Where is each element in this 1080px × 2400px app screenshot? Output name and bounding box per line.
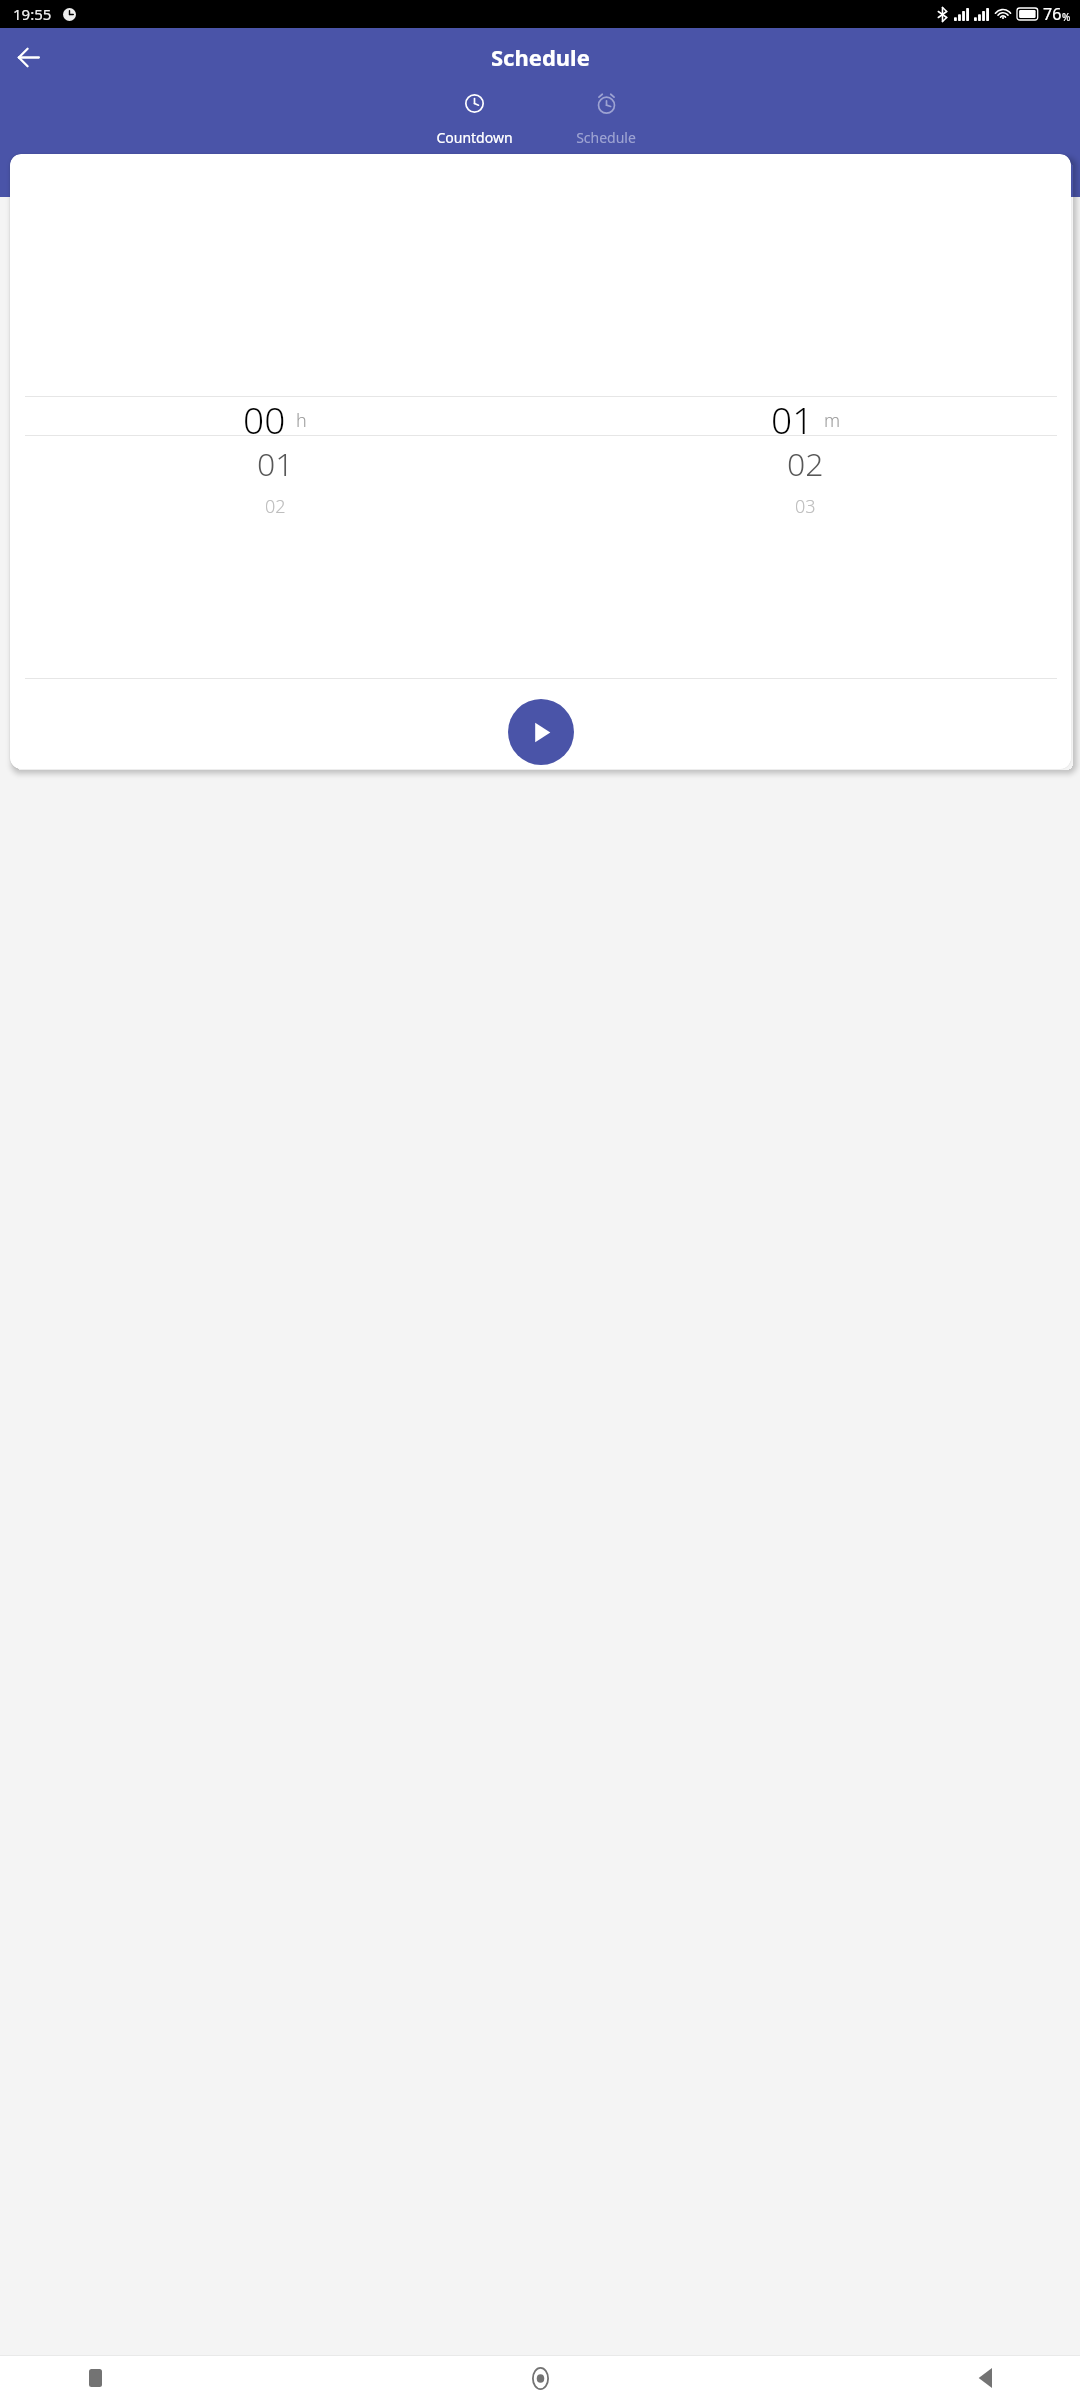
button[interactable]: 00 (10, 394, 540, 437)
button[interactable]: Back (963, 2356, 1007, 2400)
staticText: m (824, 408, 841, 433)
staticText: 02 (787, 442, 824, 484)
button[interactable]: Home (518, 2356, 562, 2400)
staticText: Schedule (576, 128, 636, 147)
button[interactable]: Countdown (418, 88, 530, 147)
staticText: 19:55 (13, 4, 52, 24)
button[interactable]: Start timer (508, 699, 574, 765)
button[interactable]: Recent apps (73, 2356, 117, 2400)
button[interactable]: 02 (540, 442, 1071, 484)
staticText: Schedule (491, 42, 590, 72)
button[interactable]: 03 (540, 491, 1071, 521)
staticText: 76 (1043, 3, 1062, 25)
button[interactable]: Back (4, 33, 52, 81)
button[interactable]: 01 (540, 394, 1071, 437)
button[interactable]: Schedule (550, 88, 662, 147)
staticText: Countdown (436, 128, 513, 147)
button[interactable]: 02 (10, 491, 540, 521)
button[interactable]: 01 (10, 442, 540, 484)
staticText: 02 (265, 494, 286, 519)
staticText: h (296, 408, 307, 433)
staticText: % (1062, 10, 1071, 24)
staticText: 01 (257, 442, 294, 484)
staticText: 01 (771, 394, 814, 437)
staticText: 03 (795, 494, 816, 519)
staticText: 00 (243, 394, 286, 437)
